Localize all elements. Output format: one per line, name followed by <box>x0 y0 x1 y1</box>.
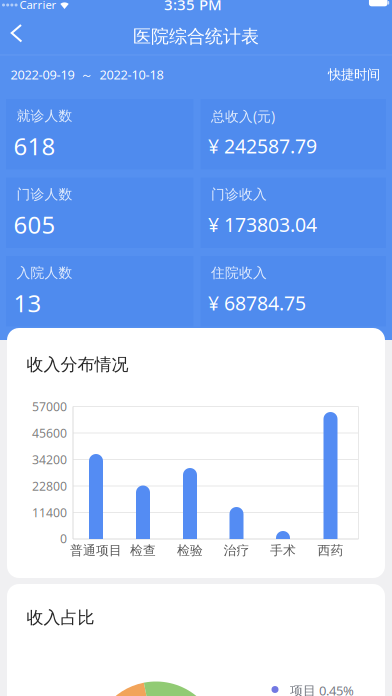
staticText: ¥ 173803.04 <box>208 211 317 238</box>
staticText: 收入分布情况 <box>26 354 128 375</box>
staticText: 22800 <box>32 478 67 494</box>
staticText: 13 <box>13 287 41 319</box>
staticText: 就诊人数 <box>16 107 72 125</box>
staticText: 普通项目 <box>70 542 122 558</box>
staticText: 57000 <box>32 398 67 415</box>
staticText: 治疗 <box>223 542 249 558</box>
staticText: 收入占比 <box>26 607 94 628</box>
staticText: 34200 <box>32 451 67 468</box>
staticText: 3:35 PM <box>164 0 222 15</box>
staticText: 618 <box>13 130 55 162</box>
staticText: 605 <box>13 208 55 241</box>
button[interactable]: 快捷时间 <box>300 66 380 83</box>
staticText: ¥ 68784.75 <box>208 290 306 316</box>
staticText: 2022-09-19 ～ 2022-10-18 <box>10 66 163 83</box>
staticText: Carrier <box>19 0 56 12</box>
staticText: 0 <box>60 530 67 547</box>
staticText: 11400 <box>32 504 67 521</box>
staticText: 住院收入 <box>211 264 267 282</box>
staticText: 手术 <box>270 542 296 558</box>
staticText: 检查 <box>130 542 156 558</box>
button[interactable]: Back <box>1 19 31 49</box>
staticText: 门诊收入 <box>211 186 267 203</box>
staticText: 快捷时间 <box>328 66 380 83</box>
staticText: 医院综合统计表 <box>133 25 259 48</box>
staticText: 入院人数 <box>16 264 72 282</box>
staticText: 45600 <box>32 425 67 441</box>
staticText: ¥ 242587.79 <box>208 133 317 159</box>
staticText: 门诊人数 <box>16 186 72 203</box>
staticText: 西药 <box>317 542 343 558</box>
button[interactable]: 2022-09-19 ～ 2022-10-18 <box>10 66 230 83</box>
staticText: 检验 <box>177 542 203 558</box>
staticText: 总收入(元) <box>211 107 275 125</box>
staticText: 项目 0.45% <box>290 682 354 696</box>
